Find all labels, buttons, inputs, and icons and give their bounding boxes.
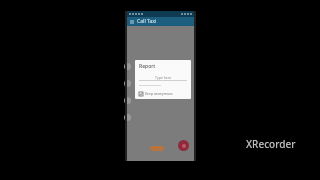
staticText: Type here bbox=[155, 75, 172, 80]
button[interactable]: Navigation menu bbox=[129, 19, 135, 25]
staticText: Call Taxi bbox=[137, 18, 157, 25]
button[interactable]: Call taxi bbox=[178, 140, 189, 151]
button[interactable]: Type here bbox=[139, 74, 187, 80]
button[interactable]: Location pin bbox=[150, 146, 164, 151]
staticText: Report bbox=[139, 63, 156, 70]
button[interactable]: Keep anonymous bbox=[139, 90, 187, 97]
staticText: XRecorder bbox=[246, 137, 296, 151]
staticText: Keep anonymous bbox=[145, 91, 173, 96]
